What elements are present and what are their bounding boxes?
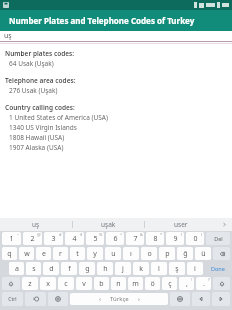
staticText: % [99, 232, 103, 237]
button[interactable]: m [128, 277, 143, 290]
staticText: n [116, 279, 121, 289]
button[interactable]: More suggestions [216, 218, 232, 231]
button[interactable]: i [187, 262, 203, 275]
button[interactable]: 9 [166, 232, 184, 245]
button[interactable]: Del [206, 232, 230, 245]
button[interactable]: o [141, 247, 157, 260]
staticText: Number Plates and Telephone Codes of Tur… [9, 15, 195, 26]
staticText: 276 Usak (Uşak) [9, 86, 58, 95]
button[interactable]: ı [123, 247, 139, 260]
button[interactable]: 7 [126, 232, 144, 245]
button[interactable]: 2 [23, 232, 42, 245]
staticText: ş [175, 264, 179, 274]
staticText: v [82, 279, 86, 289]
staticText: $ [80, 232, 83, 237]
staticText: r [59, 249, 62, 259]
staticText: & [140, 232, 143, 237]
button[interactable]: uşak [73, 218, 144, 231]
staticText: j [122, 264, 124, 274]
staticText: l [158, 264, 160, 274]
button[interactable]: u [105, 247, 121, 260]
button[interactable]: q [2, 247, 17, 260]
button[interactable]: h [97, 262, 113, 275]
button[interactable]: c [58, 277, 74, 290]
staticText: 1 [9, 234, 14, 244]
staticText: 9 [173, 234, 178, 244]
button[interactable]: 0 [186, 232, 204, 245]
staticText: Del [214, 235, 223, 242]
button[interactable]: ğ [177, 247, 193, 260]
staticText: ! [191, 277, 193, 282]
button[interactable]: user [145, 218, 216, 231]
staticText: a [15, 264, 19, 274]
button[interactable]: ü [195, 247, 211, 260]
button[interactable]: Emoji [25, 292, 46, 306]
button[interactable]: b [94, 277, 109, 290]
staticText: c [64, 279, 68, 289]
staticText: x [46, 279, 50, 289]
staticText: * [160, 232, 163, 237]
button[interactable]: Change language [170, 292, 190, 306]
button[interactable]: d [43, 262, 59, 275]
button[interactable]: Shift [213, 277, 230, 290]
button[interactable]: uş [0, 218, 72, 231]
staticText: z [28, 279, 32, 289]
button[interactable]: y [87, 247, 103, 260]
button[interactable]: ‹ [70, 293, 168, 305]
staticText: 2 [30, 234, 35, 244]
staticText: p [165, 249, 170, 259]
staticText: Telephone area codes: [5, 76, 76, 85]
staticText: ö [150, 279, 155, 289]
staticText: . [203, 279, 205, 289]
button[interactable]: Move cursor right [212, 292, 230, 306]
button[interactable]: x [40, 277, 56, 290]
staticText: ? [208, 277, 210, 282]
button[interactable]: l [151, 262, 167, 275]
staticText: ( [181, 232, 183, 237]
staticText: ‹ [99, 295, 101, 303]
button[interactable]: Move cursor left [192, 292, 210, 306]
button[interactable]: p [159, 247, 175, 260]
button[interactable]: j [115, 262, 131, 275]
button[interactable]: z [22, 277, 38, 290]
staticText: Done [211, 265, 225, 272]
button[interactable]: , [179, 277, 194, 290]
button[interactable]: n [111, 277, 126, 290]
staticText: k [139, 264, 143, 274]
staticText: y [93, 249, 97, 259]
staticText: ) [201, 232, 203, 237]
button[interactable]: Settings [48, 292, 68, 306]
staticText: 8 [153, 234, 158, 244]
button[interactable]: . [196, 277, 211, 290]
button[interactable]: ö [145, 277, 160, 290]
button[interactable]: f [61, 262, 77, 275]
button[interactable]: k [133, 262, 149, 275]
button[interactable]: t [70, 247, 85, 260]
button[interactable]: uş [0, 31, 232, 41]
button[interactable]: 6 [106, 232, 124, 245]
button[interactable]: 8 [146, 232, 164, 245]
button[interactable]: 3 [44, 232, 63, 245]
button[interactable]: a [9, 262, 24, 275]
button[interactable]: Done [205, 262, 230, 275]
button[interactable]: 5 [86, 232, 104, 245]
button[interactable]: 1 [2, 232, 21, 245]
staticText: g [85, 264, 90, 274]
button[interactable]: Ctrl [2, 292, 23, 306]
button[interactable]: ş [169, 262, 185, 275]
staticText: , [186, 279, 188, 289]
staticText: u [111, 249, 116, 259]
staticText: 7 [133, 234, 138, 244]
button[interactable]: s [26, 262, 41, 275]
staticText: uş [32, 220, 40, 229]
staticText: ^ [120, 232, 123, 237]
button[interactable]: w [19, 247, 34, 260]
button[interactable]: 4 [65, 232, 84, 245]
button[interactable]: r [53, 247, 68, 260]
button[interactable]: ç [162, 277, 177, 290]
button[interactable]: g [79, 262, 95, 275]
button[interactable]: Shift [2, 277, 20, 290]
button[interactable]: v [76, 277, 92, 290]
button[interactable]: e [36, 247, 51, 260]
button[interactable]: Backspace [213, 247, 230, 260]
